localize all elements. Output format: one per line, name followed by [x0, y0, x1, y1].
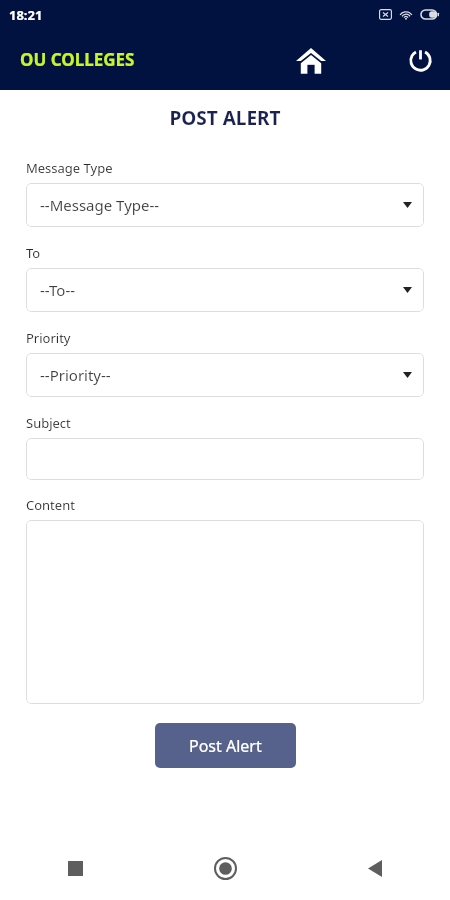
staticText: To: [26, 244, 41, 262]
button[interactable]: --Priority--: [26, 353, 424, 397]
staticText: 18:21: [9, 6, 43, 24]
button[interactable]: Post Alert: [155, 723, 296, 768]
button[interactable]: Logout: [400, 40, 440, 80]
staticText: Priority: [26, 329, 71, 347]
button[interactable]: [26, 520, 424, 704]
staticText: OU COLLEGES: [20, 48, 135, 71]
staticText: POST ALERT: [0, 105, 450, 131]
staticText: Content: [26, 496, 75, 514]
button[interactable]: Recents: [0, 836, 150, 900]
staticText: --Priority--: [40, 365, 111, 385]
button[interactable]: Home: [291, 40, 331, 80]
staticText: --To--: [40, 280, 76, 300]
button[interactable]: Back: [300, 836, 450, 900]
button[interactable]: --To--: [26, 268, 424, 312]
button[interactable]: [26, 438, 424, 480]
staticText: Post Alert: [189, 735, 262, 757]
button[interactable]: --Message Type--: [26, 183, 424, 227]
staticText: Subject: [26, 414, 71, 432]
button[interactable]: Home: [150, 836, 300, 900]
staticText: Message Type: [26, 159, 113, 177]
staticText: --Message Type--: [40, 195, 160, 215]
